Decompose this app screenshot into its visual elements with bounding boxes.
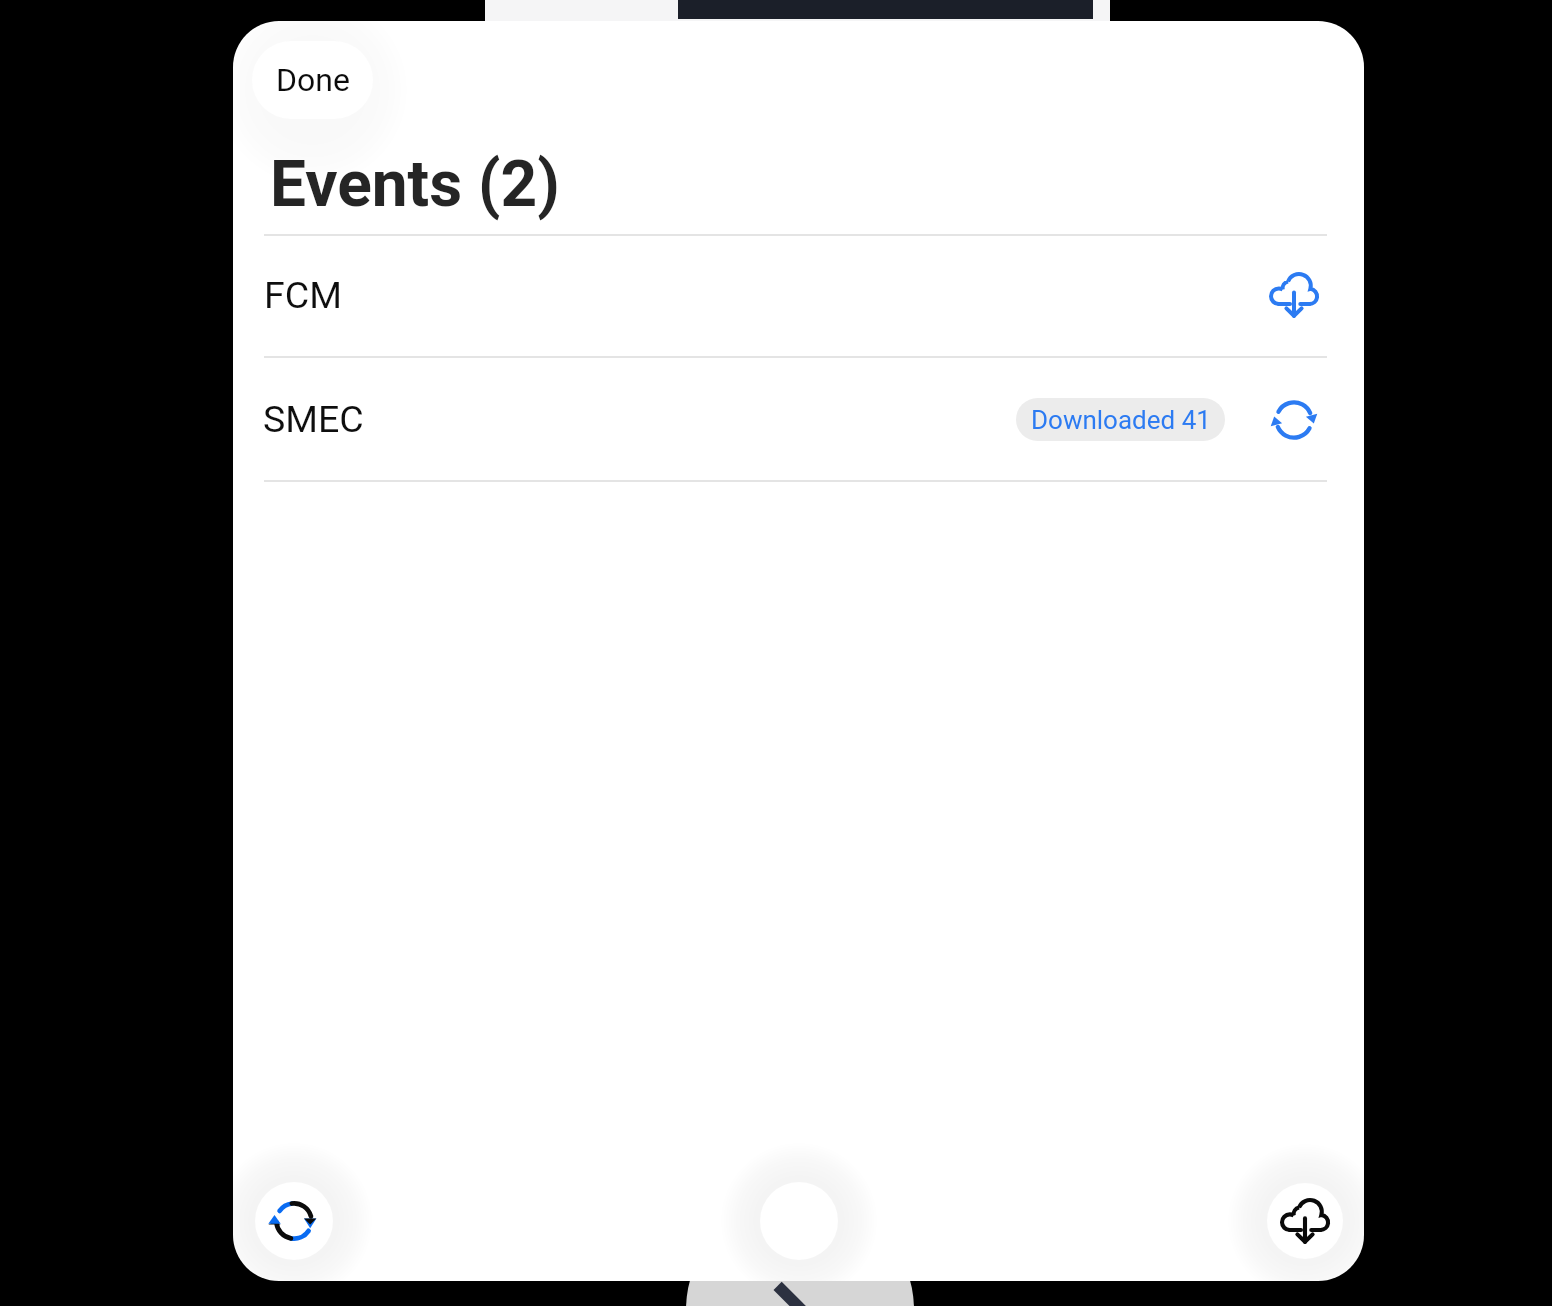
- staticText: Events (2): [270, 147, 560, 222]
- staticText: Done: [276, 61, 350, 99]
- staticText: Downloaded 41: [1031, 405, 1211, 435]
- button[interactable]: Sync all: [255, 1182, 333, 1260]
- button[interactable]: FCM: [233, 236, 1364, 356]
- button[interactable]: Download: [1268, 269, 1320, 321]
- button[interactable]: SMEC: [233, 358, 1364, 478]
- staticText: SMEC: [263, 397, 364, 441]
- button[interactable]: Action: [760, 1182, 838, 1260]
- button[interactable]: Download all: [1267, 1183, 1343, 1259]
- button[interactable]: Downloaded 41: [1016, 398, 1225, 441]
- staticText: FCM: [264, 273, 342, 317]
- button[interactable]: Done: [252, 41, 373, 119]
- button[interactable]: Sync: [1268, 394, 1320, 446]
